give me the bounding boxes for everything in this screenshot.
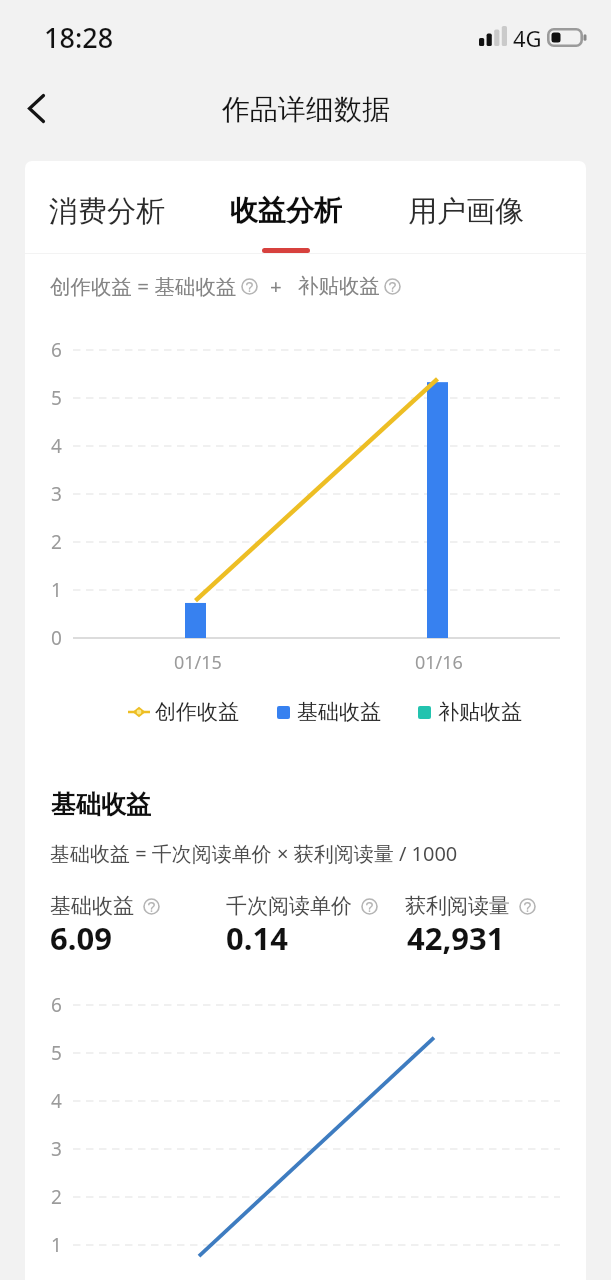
staticText: 1 [51,1232,62,1258]
staticText: 消费分析 [49,193,165,230]
staticText: 用户画像 [408,193,524,230]
staticText: 18:28 [44,19,114,56]
staticText: 获利阅读量 [405,893,510,919]
staticText: 42,931 [407,917,505,959]
staticText: 基础收益 [50,893,134,919]
staticText: 01/16 [415,650,463,675]
staticText: 0 [51,625,62,651]
staticText: 5 [51,1040,62,1066]
staticText: 4G [513,23,542,53]
staticText: 3 [51,1136,62,1162]
staticText: 补贴收益 [298,273,380,299]
staticText: 千次阅读单价 [226,893,352,919]
staticText: 补贴收益 [438,699,522,725]
staticText: 基础收益 [51,789,151,820]
button[interactable]: 收益分析 [224,161,348,253]
staticText: 收益分析 [230,193,342,228]
staticText: 01/15 [174,650,222,675]
staticText: 作品详细数据 [222,92,390,127]
staticText: 基础收益 [297,699,381,725]
staticText: 创作收益 = 基础收益 [50,272,237,300]
staticText: 基础收益 = 千次阅读单价 × 获利阅读量 / 1000 [50,840,458,867]
button[interactable]: 用户画像 [404,161,528,253]
staticText: 3 [51,481,62,507]
staticText: 0.14 [226,917,288,959]
staticText: 4 [51,433,62,459]
staticText: 2 [51,1184,62,1210]
button[interactable]: 消费分析 [45,161,169,253]
staticText: 1 [51,577,62,603]
staticText: 4 [51,1088,62,1114]
staticText: 6 [51,337,62,363]
button[interactable]: 基础收益 [277,699,381,725]
staticText: 创作收益 [155,699,239,725]
button[interactable]: Back [4,72,66,150]
button[interactable]: 创作收益 [128,699,239,725]
button[interactable]: 补贴收益 [418,699,522,725]
staticText: + [270,272,282,300]
staticText: 6.09 [50,917,112,959]
staticText: 2 [51,529,62,555]
staticText: 6 [51,992,62,1018]
staticText: 5 [51,385,62,411]
